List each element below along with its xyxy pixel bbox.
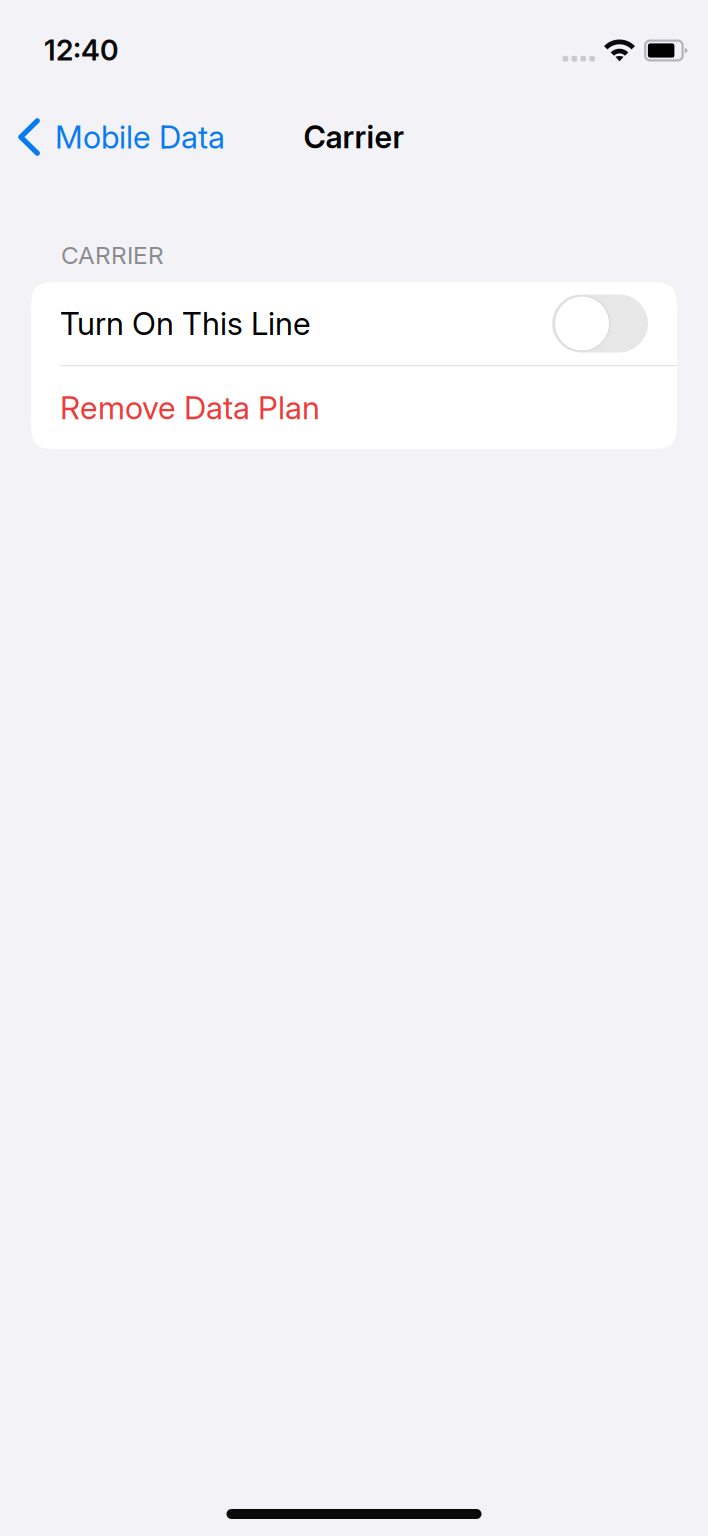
button[interactable]: Remove Data Plan bbox=[31, 366, 677, 449]
staticText: Carrier bbox=[303, 118, 404, 155]
staticText: Mobile Data bbox=[55, 118, 225, 156]
staticText: CARRIER bbox=[61, 240, 164, 270]
button[interactable]: Turn On This Line bbox=[552, 294, 648, 352]
button[interactable]: Mobile Data bbox=[0, 104, 225, 170]
staticText: Remove Data Plan bbox=[60, 389, 320, 427]
staticText: 12:40 bbox=[44, 33, 119, 67]
staticText: Turn On This Line bbox=[60, 304, 311, 343]
